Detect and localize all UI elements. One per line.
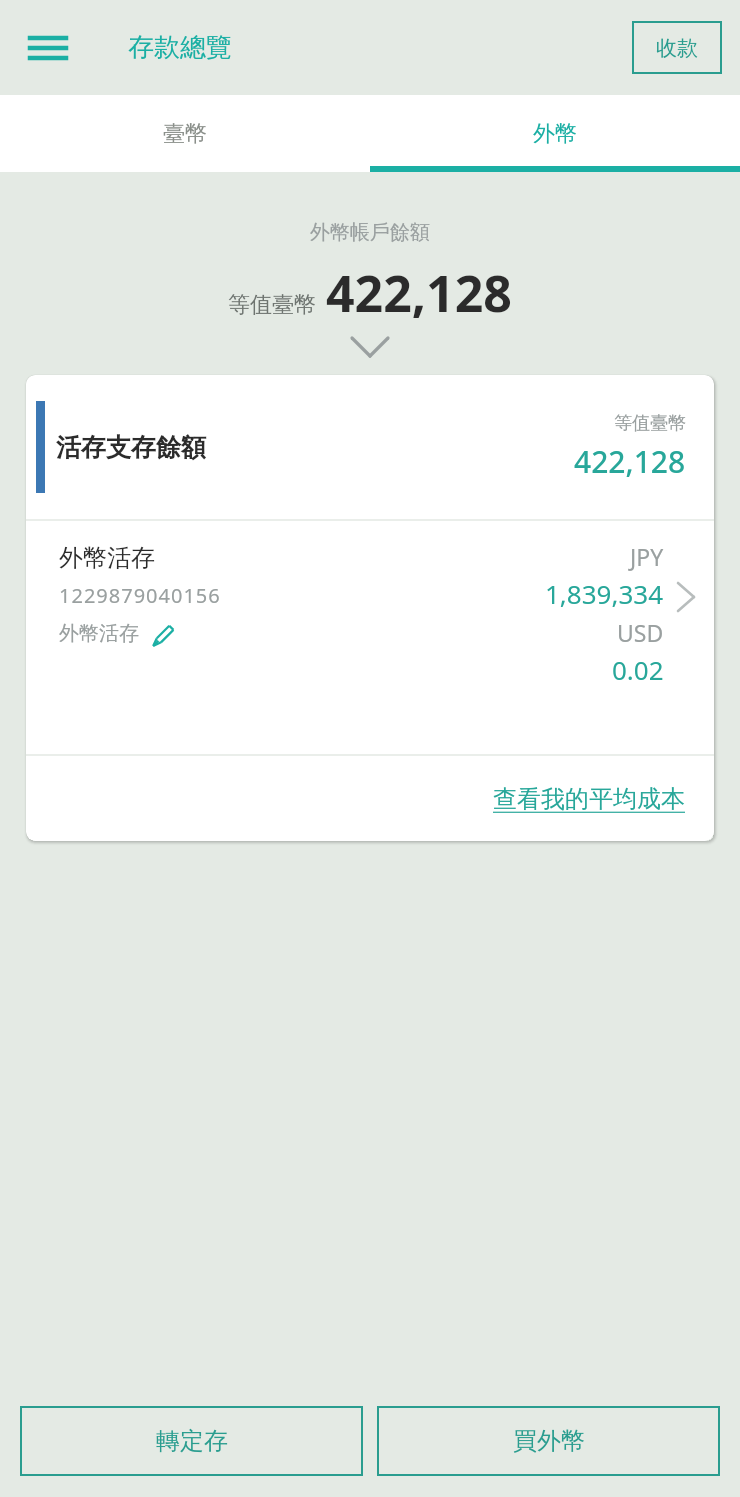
staticText: 轉定存 bbox=[156, 1426, 228, 1456]
staticText: 查看我的平均成本 bbox=[493, 784, 685, 814]
staticText: 買外幣 bbox=[513, 1426, 585, 1456]
staticText: 存款總覽 bbox=[128, 31, 232, 64]
staticText: 422,128 bbox=[326, 259, 512, 327]
button[interactable]: 買外幣 bbox=[377, 1406, 720, 1476]
staticText: 1229879040156 bbox=[59, 582, 221, 609]
button[interactable]: Edit nickname bbox=[147, 618, 177, 648]
button[interactable]: 臺幣 bbox=[0, 95, 370, 172]
staticText: USD bbox=[617, 617, 664, 648]
button[interactable]: 查看我的平均成本 bbox=[493, 784, 685, 814]
staticText: 收款 bbox=[656, 35, 698, 61]
staticText: 等值臺幣 bbox=[228, 291, 316, 319]
button[interactable]: 外幣 bbox=[370, 95, 740, 172]
staticText: 外幣活存 bbox=[59, 543, 155, 573]
staticText: 外幣活存 bbox=[59, 621, 139, 646]
button[interactable]: 外幣活存 bbox=[26, 521, 714, 754]
staticText: 外幣 bbox=[533, 120, 577, 148]
staticText: 等值臺幣 bbox=[614, 412, 686, 435]
staticText: JPY bbox=[630, 541, 664, 572]
staticText: 活存支存餘額 bbox=[56, 432, 206, 463]
button[interactable]: 收款 bbox=[632, 21, 722, 74]
button[interactable]: Expand bbox=[340, 333, 400, 361]
button[interactable]: Menu bbox=[20, 20, 76, 76]
button[interactable]: 轉定存 bbox=[20, 1406, 363, 1476]
staticText: 外幣帳戶餘額 bbox=[0, 220, 740, 245]
staticText: 1,839,334 bbox=[545, 576, 664, 611]
staticText: 422,128 bbox=[574, 441, 686, 482]
staticText: 0.02 bbox=[612, 652, 664, 687]
staticText: 臺幣 bbox=[163, 120, 207, 148]
